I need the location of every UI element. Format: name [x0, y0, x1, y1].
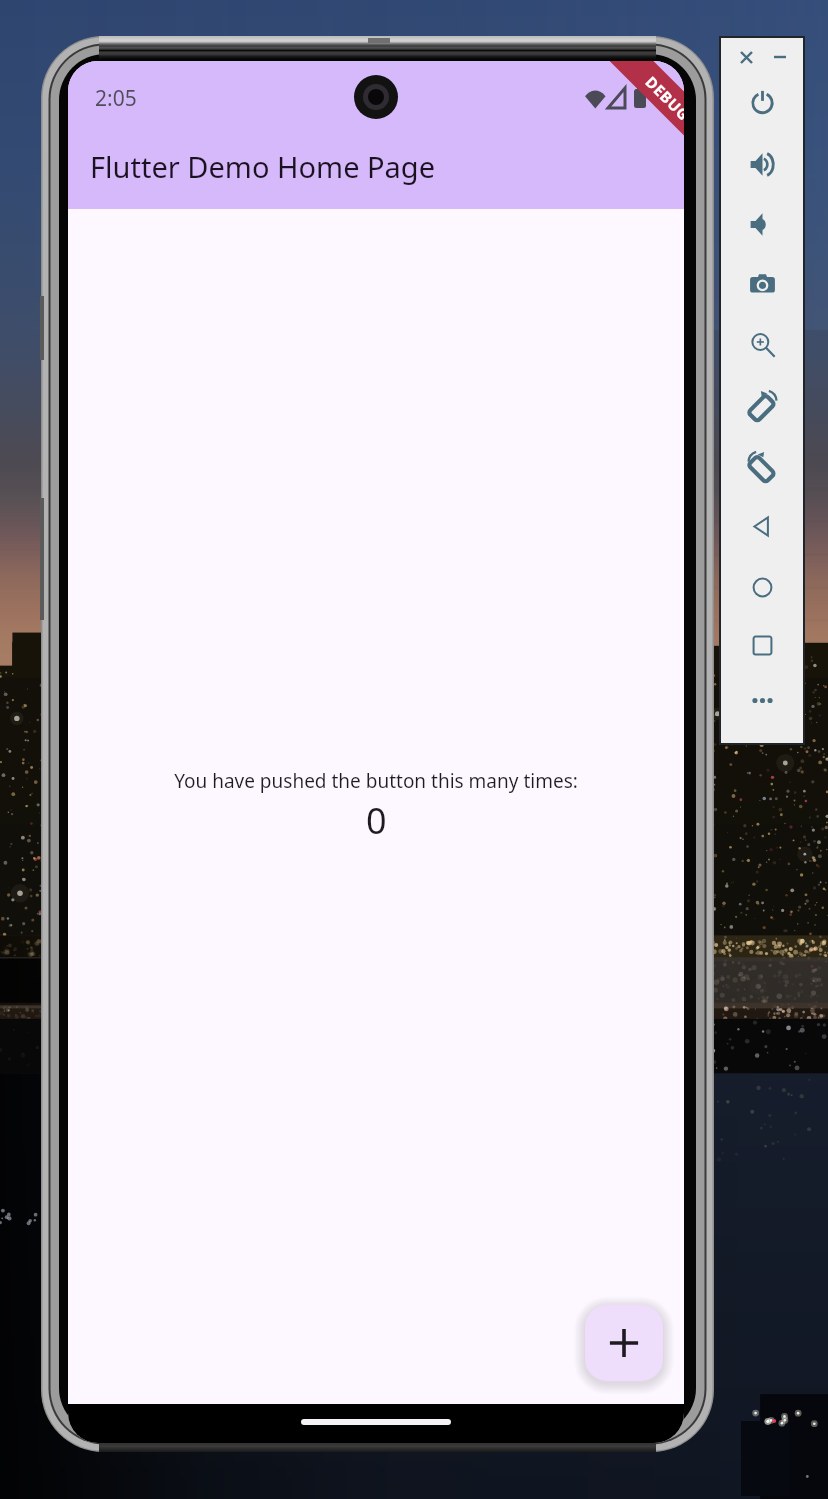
button[interactable]: Zoom — [721, 320, 803, 370]
button[interactable]: Back — [721, 501, 803, 551]
staticText: Flutter Demo Home Page — [90, 147, 436, 186]
button[interactable]: Rotate right — [721, 441, 803, 491]
button[interactable]: Increment — [585, 1305, 663, 1381]
button[interactable]: Home — [721, 562, 803, 612]
button[interactable]: Rotate left — [721, 380, 803, 430]
button[interactable]: Volume down — [721, 199, 803, 249]
button[interactable]: Volume up — [721, 139, 803, 189]
staticText: DEBUG — [641, 72, 684, 125]
button[interactable]: Power — [721, 77, 803, 127]
button[interactable]: Close — [739, 50, 753, 64]
button[interactable]: Minimize — [773, 50, 787, 64]
staticText: You have pushed the button this many tim… — [174, 768, 578, 794]
button[interactable]: Overview — [721, 620, 803, 670]
button[interactable]: More — [721, 675, 803, 725]
button[interactable]: Screenshot — [721, 259, 803, 309]
staticText: 0 — [366, 796, 387, 845]
staticText: 2:05 — [95, 84, 137, 113]
